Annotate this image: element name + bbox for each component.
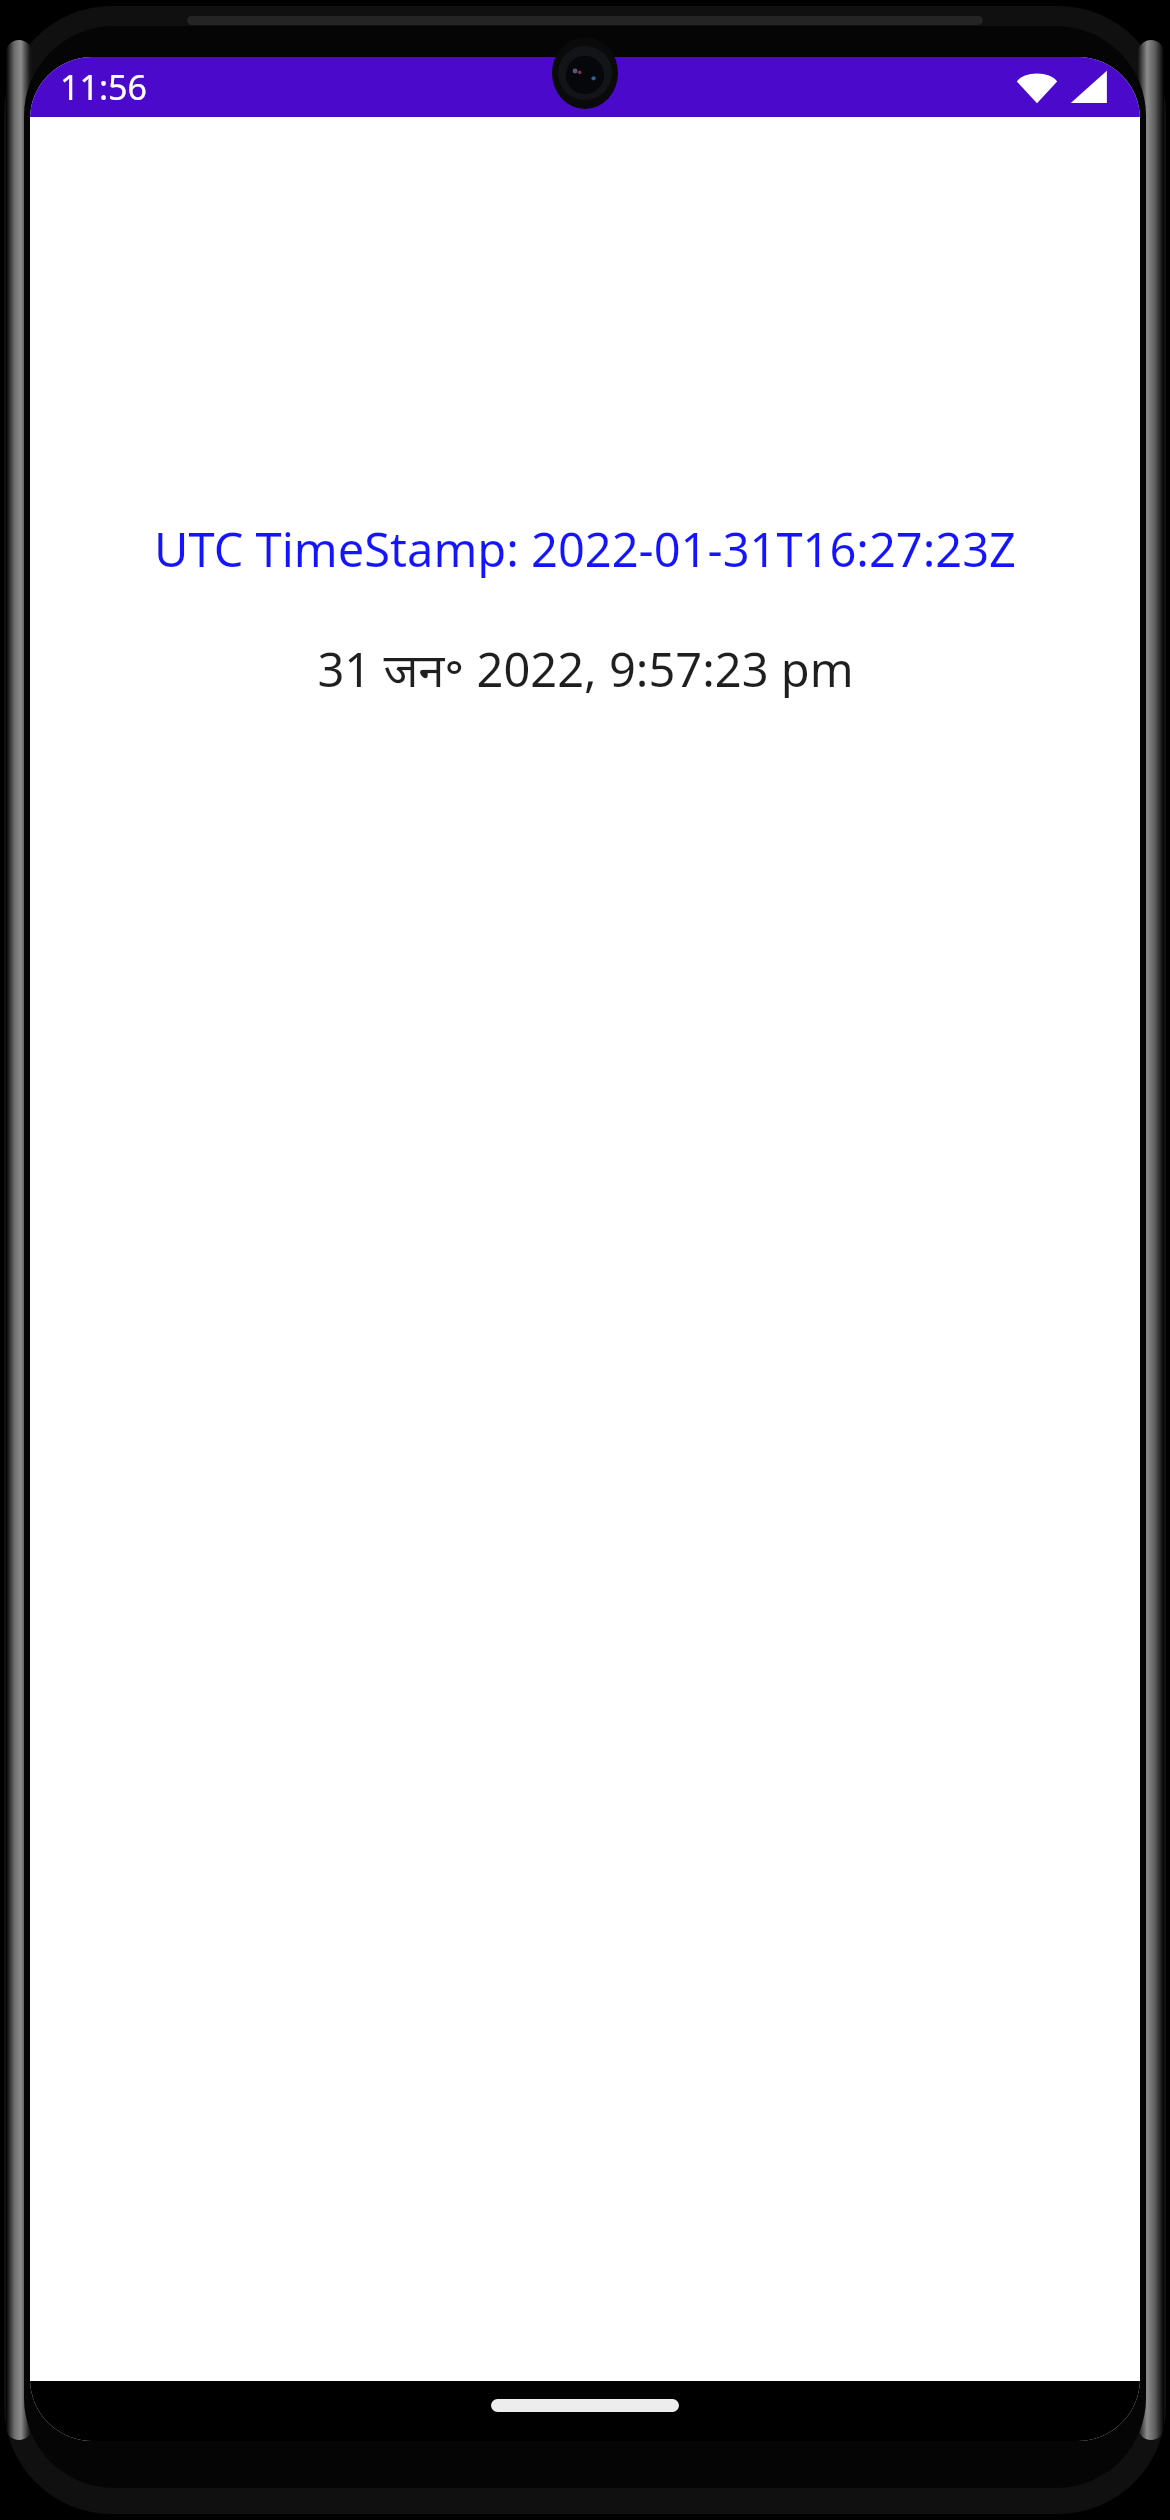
button[interactable]: 31 जन॰ 2022, 9:57:23 pm [30, 637, 1140, 701]
button[interactable]: Home gesture handle [491, 2399, 679, 2412]
staticText: UTC TimeStamp: 2022-01-31T16:27:23Z [154, 517, 1016, 581]
staticText: 31 जन॰ 2022, 9:57:23 pm [317, 637, 854, 701]
other: Mobile signal [1070, 70, 1108, 104]
staticText: 11:56 [60, 64, 147, 110]
other: Wi-Fi signal [1016, 70, 1058, 104]
button[interactable]: UTC TimeStamp: 2022-01-31T16:27:23Z [30, 517, 1140, 581]
